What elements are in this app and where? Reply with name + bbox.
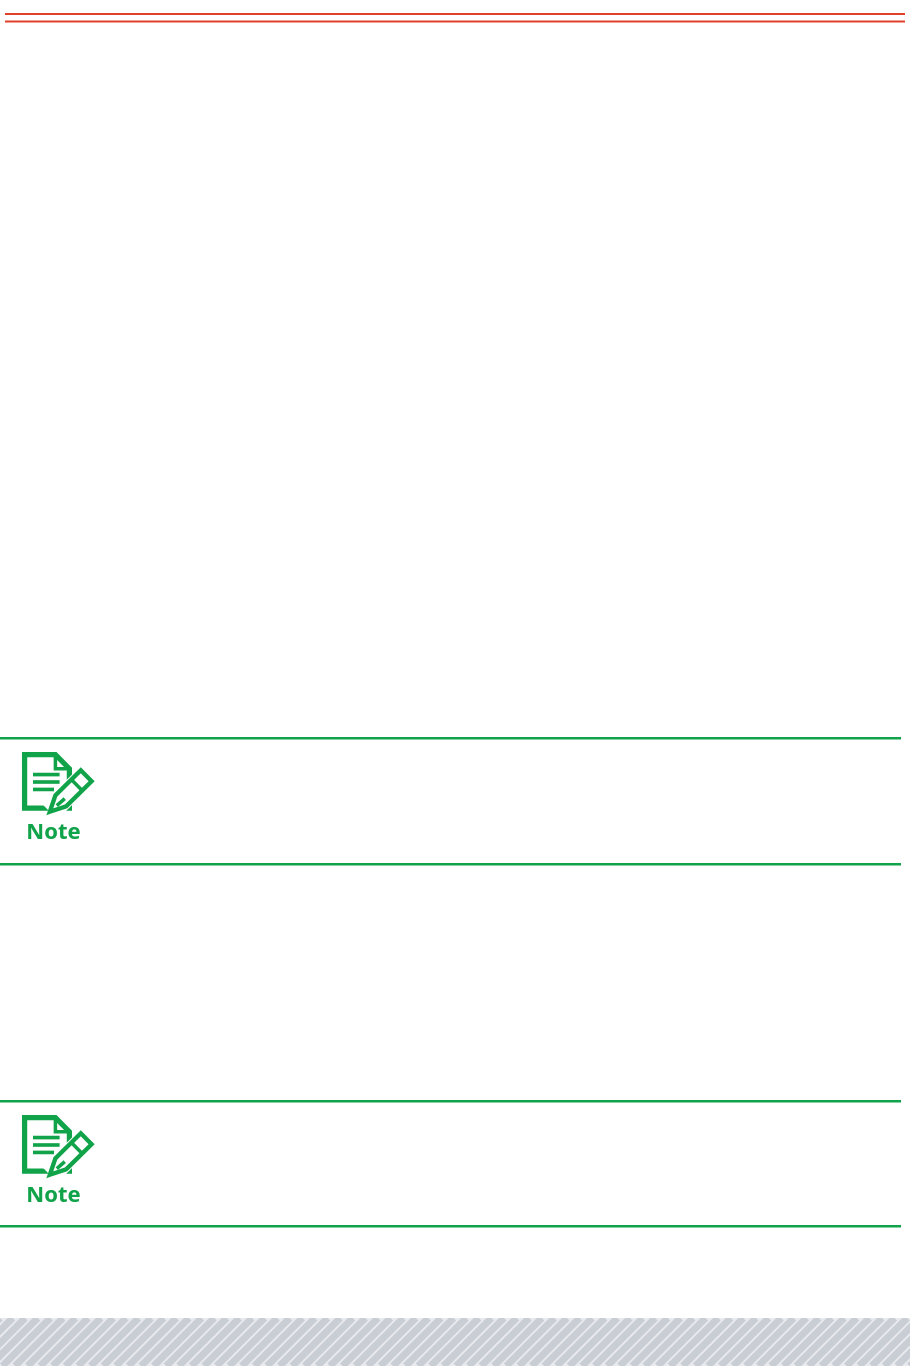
staticText: Note (26, 1178, 81, 1208)
button[interactable]: Note (0, 737, 914, 866)
staticText: Note (26, 815, 81, 845)
button[interactable]: Note (0, 1100, 914, 1228)
